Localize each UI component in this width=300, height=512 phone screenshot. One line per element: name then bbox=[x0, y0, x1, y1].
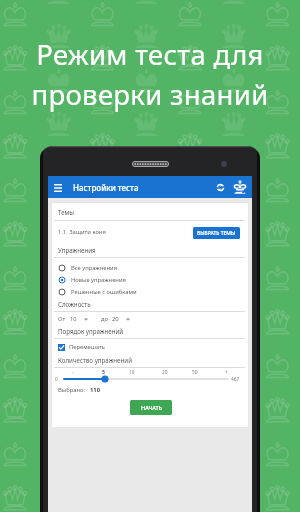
staticText: до bbox=[101, 315, 108, 323]
staticText: Решенные с ошибками bbox=[71, 288, 137, 296]
button[interactable]: Refresh bbox=[213, 180, 228, 195]
staticText: проверки знаний bbox=[31, 76, 269, 113]
button[interactable]: Решенные с ошибками bbox=[58, 286, 244, 297]
staticText: 20 bbox=[112, 315, 119, 323]
staticText: Темы bbox=[58, 208, 75, 216]
staticText: Порядок упражнений bbox=[58, 327, 124, 335]
staticText: От bbox=[58, 315, 66, 323]
staticText: Все упражнения bbox=[71, 264, 118, 272]
button[interactable]: НАЧАТЬ bbox=[130, 400, 172, 415]
staticText: Сложность bbox=[58, 300, 91, 308]
staticText: 50 bbox=[192, 369, 198, 376]
staticText: 5 bbox=[102, 368, 105, 375]
staticText: - bbox=[72, 369, 74, 376]
staticText: 1.1. Защити коня bbox=[58, 228, 106, 236]
button[interactable]: Chess king bbox=[231, 178, 249, 196]
button[interactable]: 10 bbox=[70, 315, 88, 323]
staticText: ВЫБРАТЬ ТЕМЫ bbox=[197, 230, 236, 237]
staticText: Выбрано: bbox=[58, 386, 85, 394]
staticText: Количество упражнений bbox=[58, 356, 133, 364]
staticText: 10 bbox=[70, 315, 77, 323]
staticText: Режим теста для bbox=[36, 36, 264, 73]
staticText: НАЧАТЬ bbox=[141, 404, 162, 411]
staticText: 110 bbox=[90, 386, 100, 394]
staticText: 0 bbox=[55, 376, 58, 383]
staticText: + bbox=[225, 369, 228, 376]
button[interactable]: Open navigation menu bbox=[50, 180, 65, 195]
button[interactable]: ВЫБРАТЬ ТЕМЫ bbox=[193, 227, 240, 239]
staticText: Настройки теста bbox=[73, 182, 139, 193]
button[interactable]: 20 bbox=[112, 315, 130, 323]
staticText: Упражнения bbox=[58, 246, 96, 254]
staticText: Новые упражнения bbox=[71, 276, 126, 284]
staticText: 20 bbox=[162, 369, 168, 376]
staticText: 467 bbox=[231, 376, 240, 383]
button[interactable]: Новые упражнения bbox=[58, 274, 244, 285]
staticText: Перемешать bbox=[69, 343, 106, 351]
staticText: 10 bbox=[129, 369, 135, 376]
button[interactable]: Все упражнения bbox=[58, 262, 244, 273]
button[interactable]: Перемешать bbox=[58, 343, 106, 351]
button[interactable] bbox=[60, 374, 240, 384]
